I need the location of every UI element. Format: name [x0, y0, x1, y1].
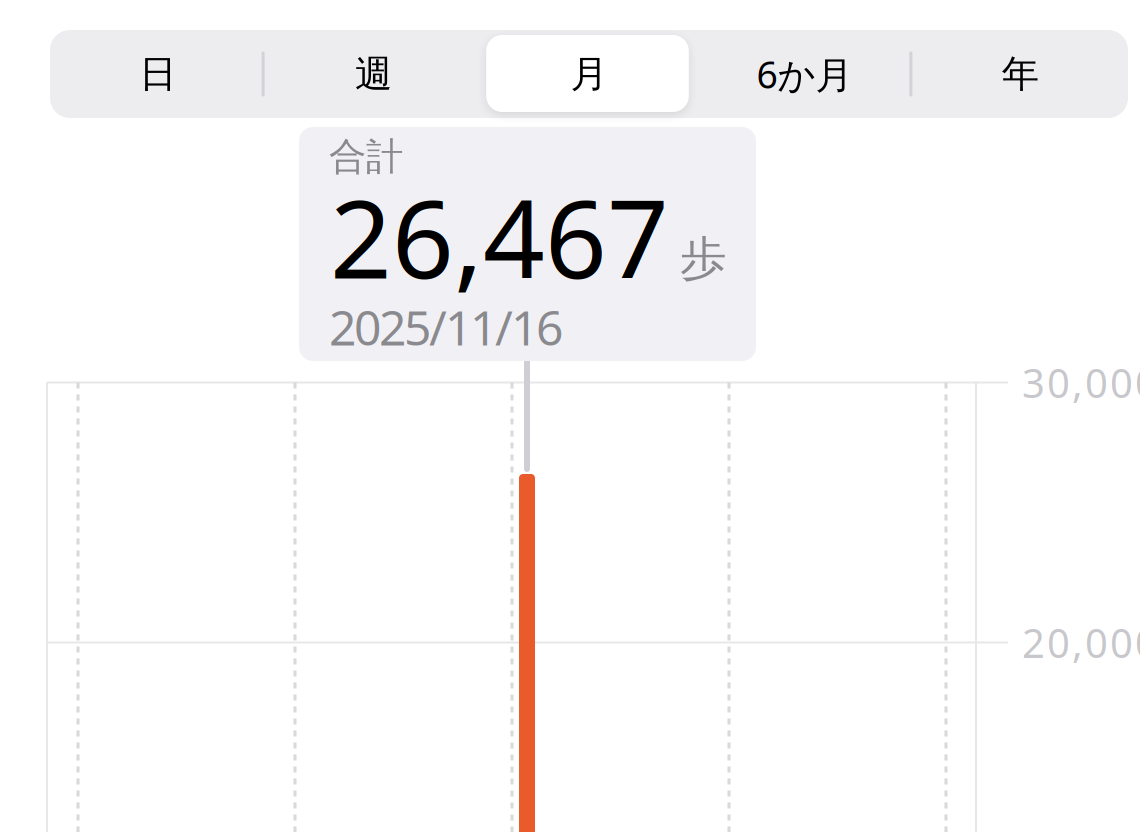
button[interactable]: 6か月: [697, 30, 912, 118]
staticText: 26,467: [330, 165, 669, 308]
button[interactable]: 月: [481, 30, 697, 118]
staticText: 週: [355, 51, 392, 97]
staticText: 30,000: [1022, 356, 1140, 409]
staticText: 合計: [329, 134, 403, 180]
staticText: 2025/11/16: [329, 295, 563, 359]
staticText: 年: [1002, 51, 1039, 97]
staticText: 歩: [680, 230, 727, 287]
staticText: 6か月: [757, 49, 853, 99]
button[interactable]: 日: [50, 30, 266, 118]
staticText: 月: [570, 51, 607, 97]
staticText: 日: [139, 51, 176, 97]
button[interactable]: 週: [266, 30, 481, 118]
staticText: 20,000: [1022, 616, 1140, 669]
button[interactable]: 年: [912, 30, 1128, 118]
